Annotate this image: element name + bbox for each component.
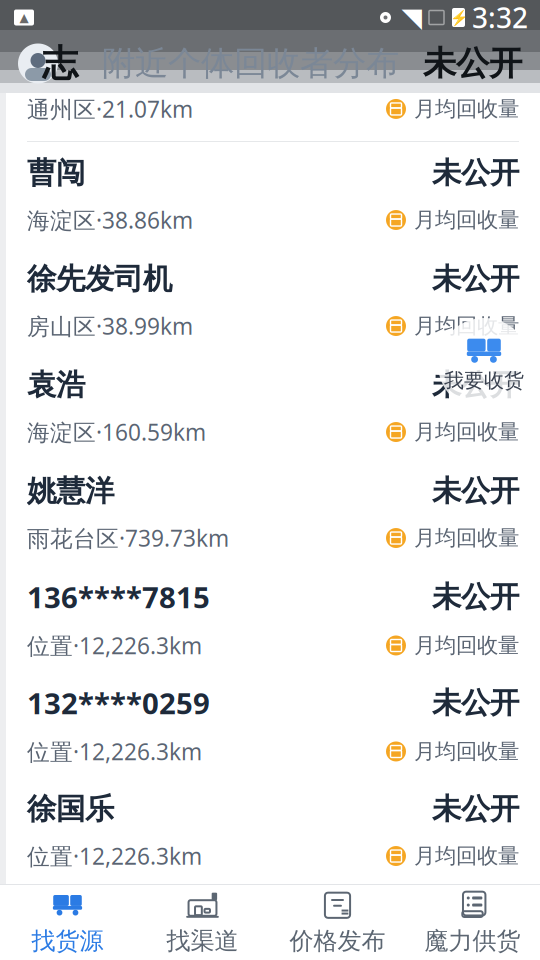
button[interactable]: 132****0259 — [6, 672, 540, 778]
staticText: 价格发布 — [289, 926, 385, 956]
staticText: 未公开 — [423, 43, 522, 84]
staticText: 海淀区·160.59km — [27, 417, 206, 447]
button[interactable]: 魔力供货 — [405, 885, 540, 959]
staticText: 姚慧洋 — [27, 473, 114, 509]
staticText: 位置·12,226.3km — [27, 630, 202, 660]
staticText: 月均回收量 — [414, 843, 519, 869]
button[interactable]: 姚慧洋 — [6, 460, 540, 566]
staticText: 月均回收量 — [414, 96, 519, 122]
staticText: 月均回收量 — [414, 207, 519, 233]
staticText: 未公开 — [432, 261, 519, 297]
staticText: 魔力供货 — [424, 926, 520, 956]
staticText: 未公开 — [432, 473, 519, 509]
staticText: 未公开 — [432, 367, 519, 403]
staticText: 未公开 — [432, 685, 519, 721]
button[interactable]: 找货源 — [0, 885, 135, 959]
staticText: 袁浩 — [27, 367, 85, 403]
staticText: 月均回收量 — [414, 738, 519, 765]
staticText: 徐先发司机 — [27, 261, 172, 297]
staticText: 海淀区·38.86km — [27, 205, 193, 235]
staticText: 通州区·21.07km — [27, 94, 193, 124]
staticText: 雨花台区·739.73km — [27, 523, 229, 553]
staticText: 徐国乐 — [27, 791, 114, 827]
staticText: 未公开 — [432, 791, 519, 827]
staticText: 136****7815 — [27, 577, 210, 616]
staticText: 未公开 — [432, 579, 519, 615]
staticText: 132****0259 — [27, 683, 210, 722]
staticText: 找渠道 — [166, 926, 238, 956]
staticText: 月均回收量 — [414, 419, 519, 445]
staticText: 位置·12,226.3km — [27, 736, 202, 766]
staticText: 月均回收量 — [414, 525, 519, 551]
staticText: ◥ — [401, 2, 422, 33]
staticText: 曹闯 — [27, 155, 85, 191]
button[interactable]: 价格发布 — [270, 885, 405, 959]
staticText: 志 — [42, 41, 78, 86]
staticText: 未公开 — [432, 155, 519, 191]
button[interactable]: 徐先发司机 — [6, 248, 540, 354]
staticText: ▲ — [19, 11, 28, 24]
staticText: 房山区·38.99km — [27, 311, 193, 341]
staticText: 月均回收量 — [414, 313, 519, 339]
staticText: 3:32 — [472, 0, 528, 36]
button[interactable]: 曹闯 — [6, 142, 540, 248]
staticText: 附近个体回收者分布 — [102, 43, 399, 84]
button[interactable]: 136****7815 — [6, 566, 540, 672]
staticText: 找货源 — [31, 926, 103, 956]
button[interactable]: 徐国乐 — [6, 778, 540, 884]
button[interactable]: 找渠道 — [135, 885, 270, 959]
button[interactable]: 个人中心 — [0, 41, 78, 86]
button[interactable]: 袁浩 — [6, 354, 540, 460]
staticText: 月均回收量 — [414, 632, 519, 659]
button[interactable]: 我要收货 — [438, 318, 530, 410]
staticText: 位置·12,226.3km — [27, 841, 202, 871]
staticText: 我要收货 — [444, 368, 524, 393]
staticText: ⚡ — [449, 9, 467, 26]
